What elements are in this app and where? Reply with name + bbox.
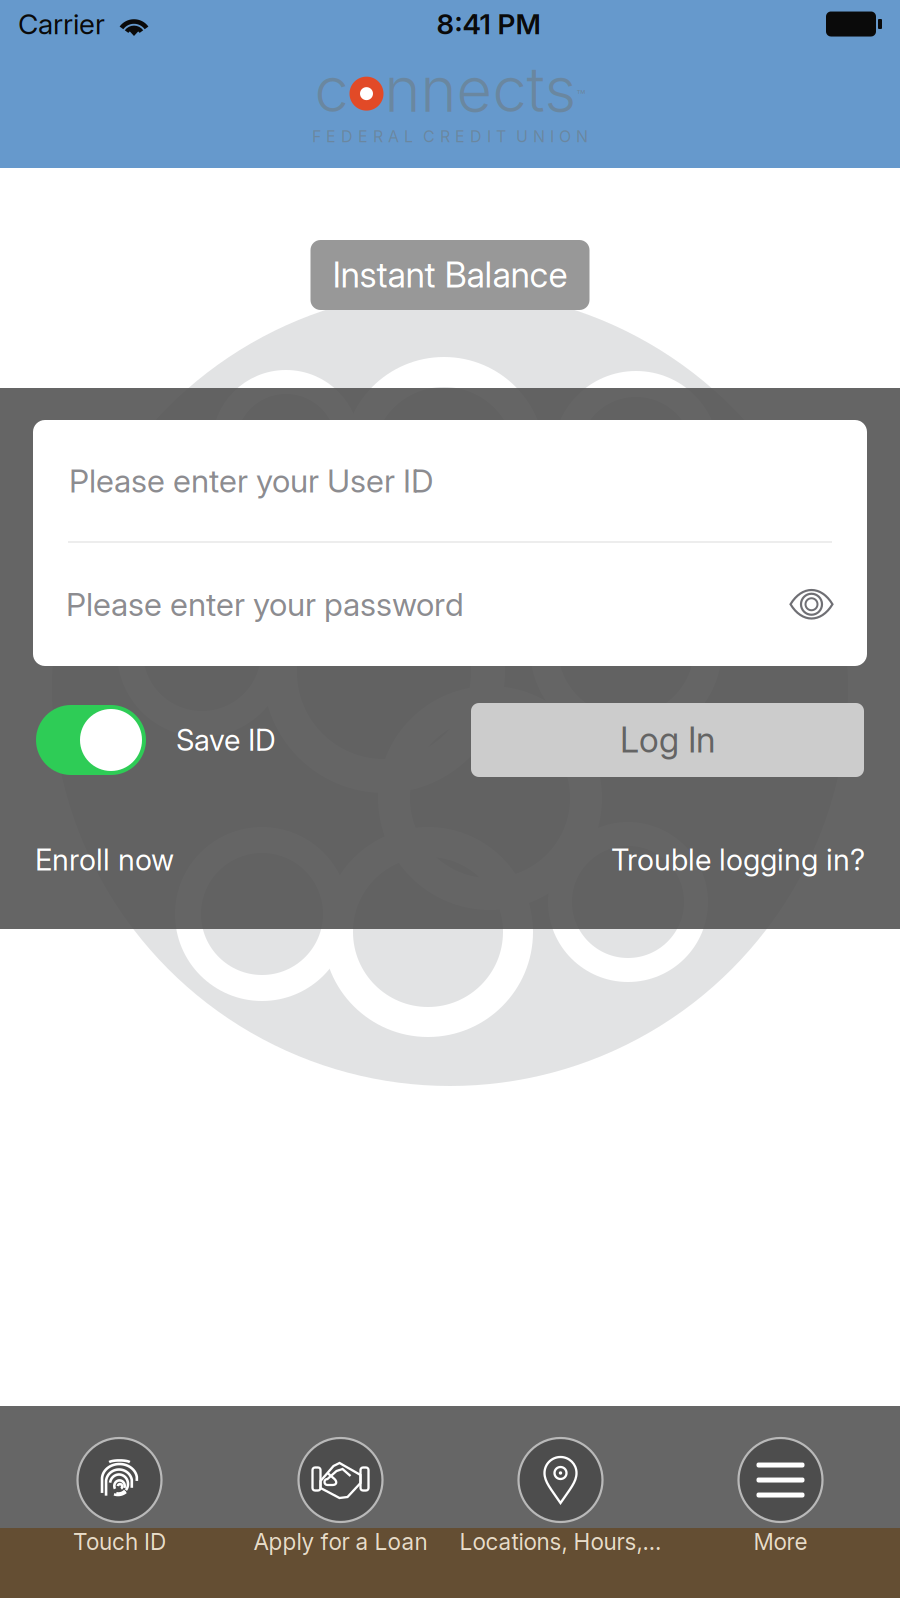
button[interactable]: Locations, Hours,…	[450, 1406, 675, 1598]
button[interactable]: Save ID	[36, 705, 276, 775]
button[interactable]: Apply for a Loan	[225, 1406, 450, 1598]
staticText: nnects	[384, 52, 576, 127]
staticText: Please enter your User ID	[69, 461, 434, 500]
button[interactable]: More	[675, 1406, 900, 1598]
staticText: Touch ID	[73, 1528, 166, 1555]
staticText: 8:41 PM	[436, 7, 540, 41]
button[interactable]: Trouble logging in?	[611, 842, 865, 877]
button[interactable]: Instant Balance	[310, 240, 589, 310]
staticText: Instant Balance	[332, 254, 567, 296]
button[interactable]: Please enter your password	[33, 543, 867, 666]
staticText: Apply for a Loan	[253, 1528, 427, 1555]
button[interactable]: Touch ID	[0, 1406, 225, 1598]
staticText: c	[314, 52, 348, 127]
staticText: Save ID	[176, 722, 276, 758]
staticText: F E D E R A L C R E D I T U N I O N	[312, 127, 588, 146]
button[interactable]: Enroll now	[35, 842, 174, 877]
staticText: ™	[576, 87, 585, 105]
staticText: Please enter your password	[66, 585, 464, 624]
staticText: Carrier	[18, 7, 105, 41]
staticText: More	[753, 1528, 807, 1555]
staticText: Trouble logging in?	[611, 842, 865, 877]
button[interactable]: Please enter your User ID	[33, 420, 867, 541]
staticText: Enroll now	[35, 842, 174, 877]
staticText: Locations, Hours,…	[459, 1528, 661, 1555]
button[interactable]: Log In	[471, 703, 864, 777]
staticText: Log In	[620, 719, 715, 761]
